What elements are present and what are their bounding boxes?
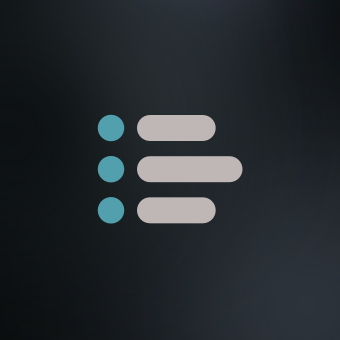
image: App logo: bulleted list [0, 0, 340, 340]
